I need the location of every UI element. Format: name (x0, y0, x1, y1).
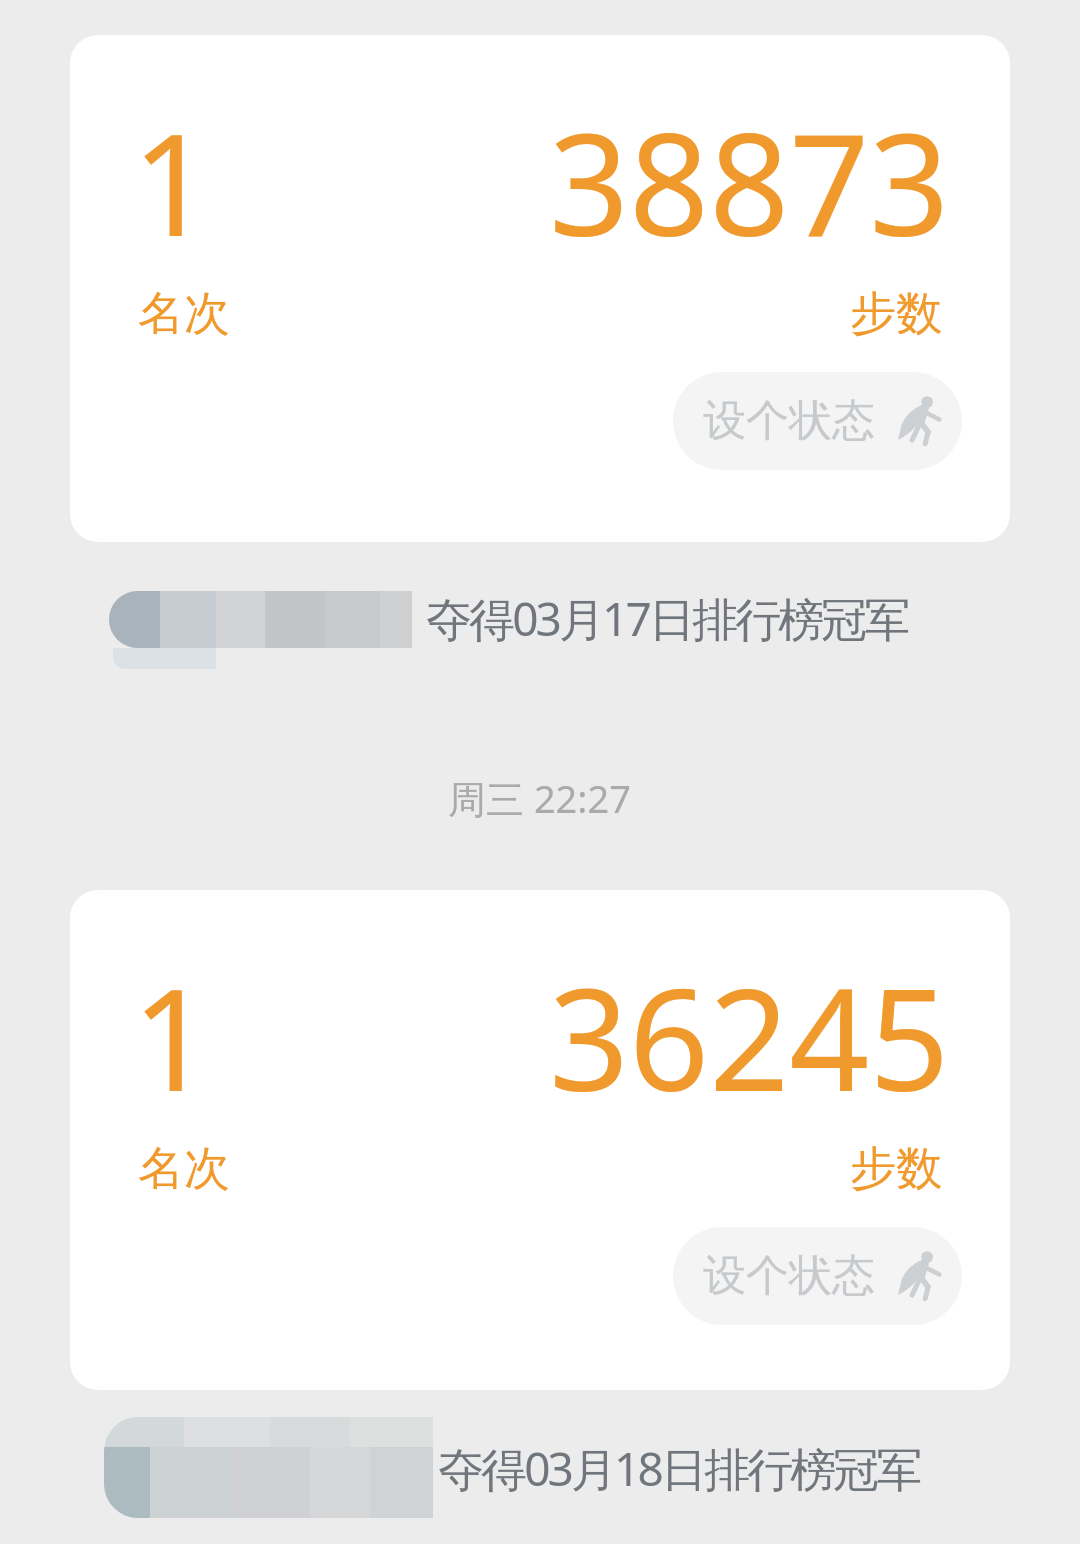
button[interactable]: 1 (70, 890, 1010, 1390)
button[interactable]: 1 (70, 35, 1010, 542)
button[interactable]: 设个状态 (673, 1227, 962, 1325)
staticText: 1 (132, 941, 213, 1132)
staticText: 步数 (850, 1140, 942, 1198)
staticText: 设个状态 (703, 394, 875, 448)
staticText: 36245 (549, 941, 950, 1132)
staticText: 名次 (138, 1140, 230, 1198)
button[interactable]: 设个状态 (673, 372, 962, 470)
staticText: 38873 (549, 86, 950, 277)
staticText: 周三 22:27 (448, 772, 632, 824)
staticText: 夺得03月17日排行榜冠军 (426, 587, 908, 650)
staticText: 夺得03月18日排行榜冠军 (438, 1437, 920, 1500)
staticText: 设个状态 (703, 1249, 875, 1303)
staticText: 名次 (138, 285, 230, 343)
staticText: 步数 (850, 285, 942, 343)
staticText: 1 (132, 86, 213, 277)
